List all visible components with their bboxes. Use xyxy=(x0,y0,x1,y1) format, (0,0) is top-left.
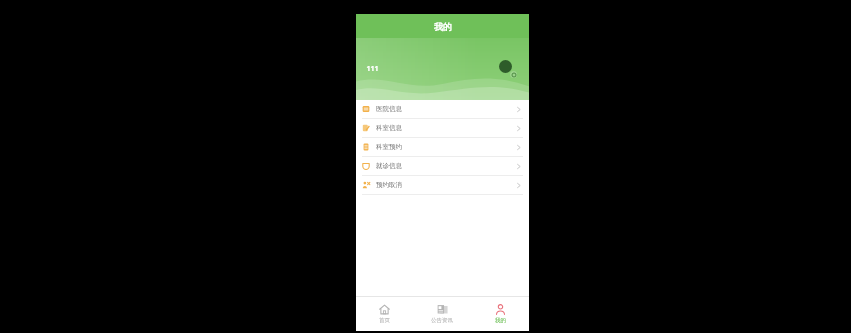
staticText: 我的 xyxy=(495,317,506,324)
button[interactable]: 科室信息 xyxy=(356,119,529,137)
button[interactable]: 111 xyxy=(364,62,381,76)
staticText: 首页 xyxy=(379,317,390,324)
staticText: 科室预约 xyxy=(376,143,402,151)
staticText: 科室信息 xyxy=(376,124,402,132)
button[interactable]: Home xyxy=(356,297,413,331)
staticText: 预约取消 xyxy=(376,181,402,189)
staticText: 就诊信息 xyxy=(376,162,402,170)
button[interactable]: Profile xyxy=(471,297,529,331)
button[interactable]: Profile avatar xyxy=(499,60,517,78)
staticText: 111 xyxy=(366,64,379,74)
staticText: 医院信息 xyxy=(376,105,402,113)
button[interactable]: 医院信息 xyxy=(356,100,529,118)
button[interactable]: 就诊信息 xyxy=(356,157,529,175)
button[interactable]: 预约取消 xyxy=(356,176,529,194)
staticText: 公告资讯 xyxy=(431,317,453,324)
button[interactable]: 科室预约 xyxy=(356,138,529,156)
button[interactable]: News xyxy=(413,297,471,331)
staticText: 我的 xyxy=(434,21,452,32)
